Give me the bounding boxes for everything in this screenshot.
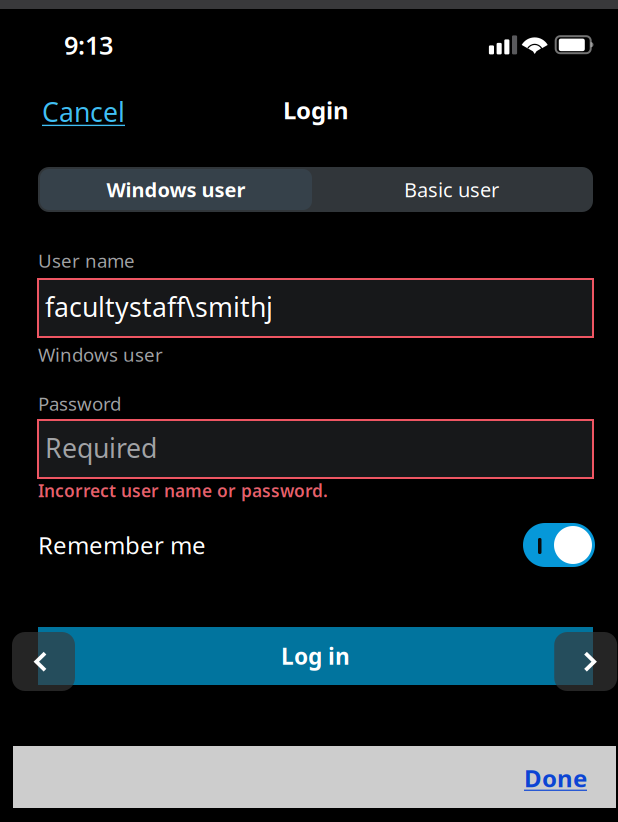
staticText: Log in — [281, 641, 350, 671]
button[interactable]: Basic user — [312, 169, 591, 210]
staticText: Cancel — [42, 94, 125, 129]
button[interactable]: Cancel — [42, 94, 125, 129]
staticText: 9:13 — [64, 28, 113, 62]
button[interactable]: Remember me — [523, 523, 595, 567]
button[interactable]: Next field — [554, 632, 617, 691]
button[interactable]: Windows user — [40, 169, 312, 210]
staticText: Incorrect user name or password. — [38, 479, 328, 502]
button[interactable]: Previous field — [12, 632, 75, 691]
staticText: Password — [38, 391, 121, 416]
staticText: Done — [524, 762, 587, 794]
staticText: Required — [45, 430, 157, 465]
staticText: Basic user — [404, 176, 499, 203]
button[interactable]: Done — [524, 762, 587, 794]
staticText: facultystaff\smithj — [45, 289, 273, 324]
button[interactable]: Log in — [38, 627, 593, 685]
staticText: User name — [38, 248, 135, 273]
staticText: Windows user — [38, 342, 163, 367]
staticText: Windows user — [106, 176, 245, 203]
staticText: Login — [283, 94, 349, 126]
staticText: Remember me — [38, 529, 206, 561]
